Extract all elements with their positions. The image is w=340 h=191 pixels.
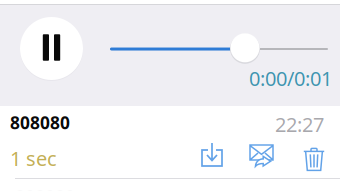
staticText: 22:27 <box>275 111 324 138</box>
staticText: 808080 <box>10 111 70 134</box>
staticText: 0:00/0:01 <box>249 65 332 92</box>
button[interactable]: Pause <box>20 17 83 80</box>
staticText: 1 sec <box>10 145 57 172</box>
button[interactable]: Delete <box>303 146 325 172</box>
button[interactable]: Forward <box>249 144 274 172</box>
button[interactable]: Save <box>201 142 223 167</box>
